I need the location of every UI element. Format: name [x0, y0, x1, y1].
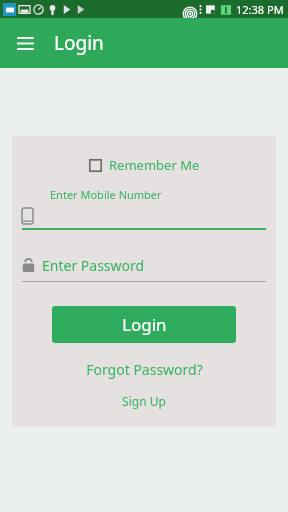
button[interactable]: Sign Up	[116, 391, 172, 411]
staticText: Forgot Password?	[86, 360, 203, 379]
button[interactable]: Login	[52, 306, 236, 343]
staticText: Enter Mobile Number	[50, 187, 162, 202]
staticText: 12:38 PM	[236, 2, 284, 17]
button[interactable]: Open navigation menu	[8, 26, 42, 60]
button[interactable]: Enter Password	[12, 256, 276, 282]
button[interactable]: Remember Me	[85, 154, 204, 176]
staticText: Sign Up	[122, 393, 166, 409]
button[interactable]: Forgot Password?	[80, 358, 209, 381]
staticText: Login	[122, 313, 167, 336]
staticText: Enter Password	[42, 256, 145, 275]
staticText: Login	[54, 30, 104, 56]
staticText: Remember Me	[109, 156, 200, 174]
button[interactable]: Enter Mobile Number	[12, 187, 276, 230]
